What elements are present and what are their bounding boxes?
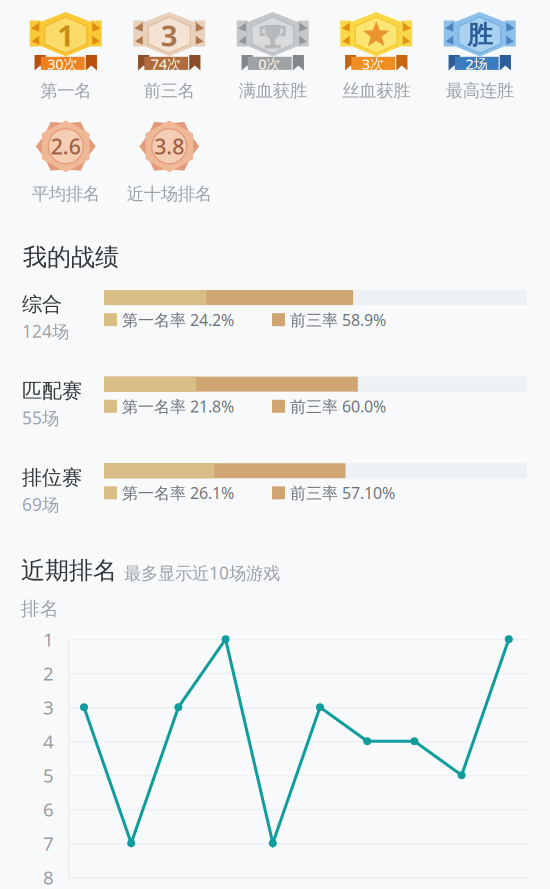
staticText: 2.6	[51, 132, 81, 160]
staticText: 6	[43, 797, 54, 822]
staticText: 0次	[258, 54, 281, 73]
staticText: 3.8	[154, 132, 184, 160]
staticText: 前三率 58.9%	[290, 309, 386, 330]
staticText: 最多显示近10场游戏	[124, 561, 280, 584]
staticText: 第一名率 24.2%	[122, 309, 234, 330]
staticText: 前三率 60.0%	[290, 396, 386, 417]
staticText: 最高连胜	[446, 80, 514, 101]
staticText: 2	[43, 661, 54, 686]
staticText: 排位赛	[22, 465, 82, 490]
staticText: 胜	[467, 19, 492, 50]
staticText: 69场	[22, 493, 59, 516]
staticText: 综合	[22, 292, 62, 317]
staticText: 第一名率 26.1%	[122, 482, 234, 503]
staticText: 近十场排名	[127, 183, 212, 205]
staticText: 2场	[465, 54, 488, 73]
staticText: 30次	[47, 54, 78, 73]
staticText: 4	[43, 729, 54, 754]
staticText: 1	[57, 15, 74, 54]
staticText: 74次	[151, 54, 182, 73]
staticText: 丝血获胜	[342, 80, 410, 101]
staticText: 7	[43, 831, 54, 856]
staticText: 5	[43, 763, 54, 788]
staticText: 我的战绩	[23, 243, 119, 272]
staticText: 8	[43, 865, 54, 889]
staticText: 近期排名	[21, 556, 117, 585]
staticText: 3	[43, 695, 54, 720]
staticText: 满血获胜	[239, 80, 307, 101]
staticText: 1	[43, 627, 54, 652]
staticText: 55场	[22, 406, 59, 429]
staticText: 前三率 57.10%	[290, 482, 395, 503]
staticText: 匹配赛	[22, 379, 82, 403]
staticText: 第一名	[40, 80, 91, 101]
staticText: 前三名	[144, 80, 195, 101]
staticText: 第一名率 21.8%	[122, 396, 234, 417]
staticText: 3	[161, 15, 178, 54]
staticText: 排名	[21, 597, 59, 620]
staticText: 平均排名	[32, 183, 100, 205]
staticText: 124场	[22, 320, 69, 343]
staticText: 3次	[362, 54, 385, 73]
